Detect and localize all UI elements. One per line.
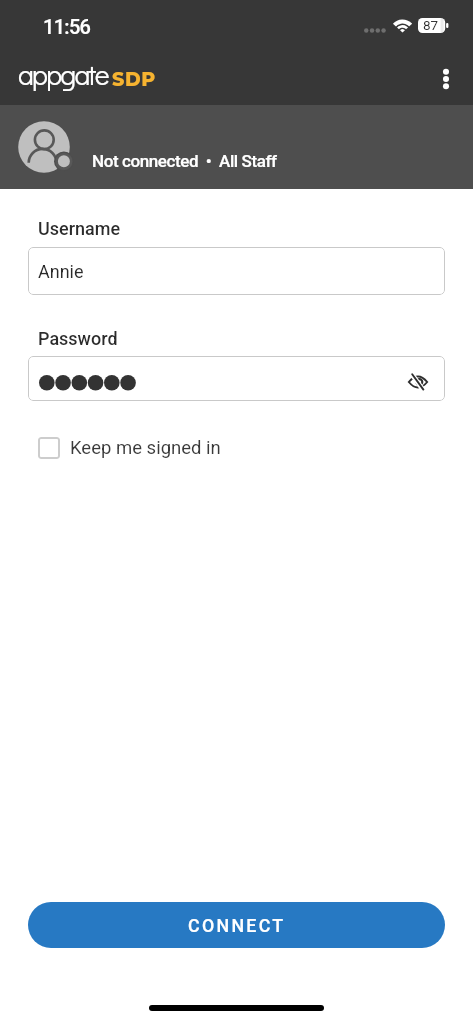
staticText: Password [38, 328, 118, 349]
staticText: Annie [38, 261, 84, 282]
staticText: CONNECT [188, 915, 286, 936]
button[interactable]: Show password [28, 356, 445, 401]
button[interactable]: Keep me signed in [28, 429, 221, 467]
button[interactable]: Annie [28, 247, 445, 295]
staticText: 11:56 [43, 15, 91, 38]
staticText: Keep me signed in [70, 437, 221, 459]
button[interactable]: Show password [398, 362, 437, 401]
staticText: Username [38, 218, 121, 239]
staticText: appgate [18, 55, 108, 92]
staticText: Not connected • All Staff [92, 151, 277, 171]
staticText: SDP [112, 68, 156, 91]
button[interactable]: CONNECT [28, 902, 445, 948]
button[interactable]: More options [422, 55, 470, 103]
button[interactable]: Not connected • All Staff [0, 105, 473, 189]
staticText: 87 [423, 17, 439, 32]
